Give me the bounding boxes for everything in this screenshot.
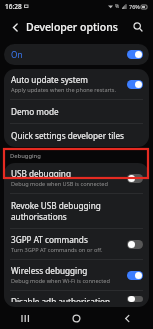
staticText: 3GPP AT commands: [11, 234, 88, 245]
staticText: Apply updates when the phone restarts.: [11, 86, 117, 94]
button[interactable]: Back: [102, 307, 153, 329]
staticText: Auto update system: [11, 74, 89, 85]
button[interactable]: USB debugging: [4, 163, 149, 193]
staticText: Disable adb authorisation timeout: [11, 296, 123, 302]
button[interactable]: Home: [51, 307, 102, 329]
button[interactable]: Quick settings developer tiles: [4, 124, 149, 147]
staticText: Demo mode: [11, 106, 59, 117]
button[interactable]: Back: [7, 19, 23, 35]
button[interactable]: On: [4, 44, 149, 65]
staticText: Wireless debugging: [11, 265, 88, 276]
staticText: USB debugging: [11, 168, 71, 179]
button[interactable]: Recents: [0, 307, 51, 329]
button[interactable]: Revoke USB debugging authorisations: [4, 194, 149, 228]
staticText: %: [115, 3, 120, 10]
staticText: Revoke USB debugging authorisations: [11, 200, 143, 222]
button[interactable]: Auto update system: [4, 69, 149, 99]
button[interactable]: 3GPP AT commands: [4, 229, 149, 259]
staticText: Developer options: [26, 20, 118, 34]
staticText: Quick settings developer tiles: [11, 130, 124, 141]
staticText: On: [11, 49, 23, 60]
button[interactable]: Disable adb authorisation timeout: [4, 291, 149, 307]
button[interactable]: Demo mode: [4, 100, 149, 123]
staticText: Turn 3GPP AT commands on or off.: [11, 246, 103, 254]
staticText: Debug mode when USB is connected: [11, 180, 108, 188]
staticText: 76%: [129, 3, 140, 10]
staticText: Debug mode when Wi-Fi is connected: [11, 277, 110, 285]
staticText: 16:28: [5, 2, 22, 11]
staticText: Debugging: [10, 152, 41, 160]
button[interactable]: Search: [130, 19, 146, 35]
button[interactable]: Wireless debugging: [4, 260, 149, 290]
